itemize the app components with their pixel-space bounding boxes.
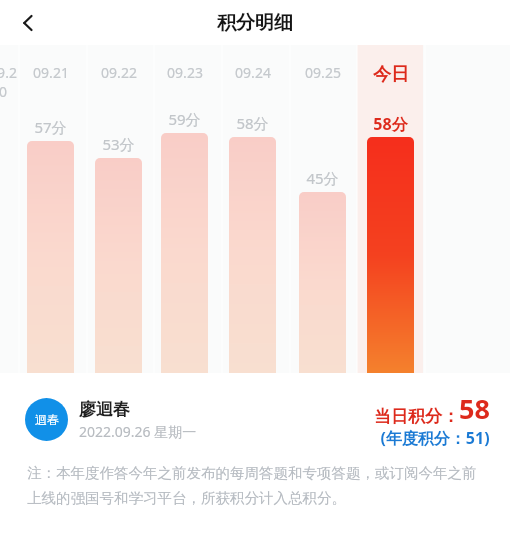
staticText: 当日积分：: [374, 406, 459, 427]
staticText: 57分: [34, 117, 67, 137]
button[interactable]: 迴春: [25, 398, 68, 441]
staticText: (年度积分：51): [380, 427, 490, 449]
button[interactable]: Back: [6, 1, 50, 45]
staticText: 58: [459, 390, 490, 427]
button[interactable]: [161, 133, 208, 373]
button[interactable]: [27, 141, 74, 373]
staticText: 09.20: [0, 63, 19, 101]
staticText: 2022.09.26 星期一: [79, 422, 197, 441]
staticText: 廖迴春: [79, 399, 130, 420]
button[interactable]: [95, 158, 142, 373]
staticText: 45分: [306, 168, 339, 188]
button[interactable]: [229, 137, 276, 373]
staticText: 迴春: [35, 412, 59, 427]
staticText: 58分: [373, 113, 408, 135]
staticText: 09.21: [33, 63, 69, 82]
staticText: 注：本年度作答今年之前发布的每周答题和专项答题，或订阅今年之前上线的强国号和学习…: [27, 464, 486, 507]
staticText: 09.24: [235, 63, 271, 82]
staticText: 59分: [168, 109, 201, 129]
button[interactable]: [299, 192, 346, 373]
staticText: 积分明细: [217, 11, 293, 35]
staticText: 09.22: [101, 63, 137, 82]
staticText: 09.23: [167, 63, 203, 82]
staticText: 今日: [373, 63, 409, 86]
staticText: 58分: [236, 113, 269, 133]
button[interactable]: [367, 137, 414, 373]
staticText: 09.25: [305, 63, 341, 82]
staticText: 53分: [102, 134, 135, 154]
